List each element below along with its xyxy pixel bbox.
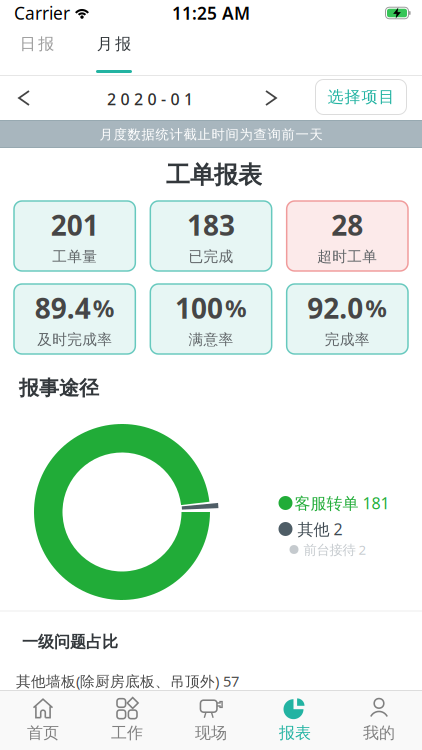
staticText: 报事途径 <box>19 376 99 400</box>
staticText: 客服转单 181 <box>294 492 389 514</box>
staticText: 月报 <box>97 34 131 54</box>
button[interactable]: 工作 <box>85 692 169 748</box>
staticText: 2020-01 <box>107 88 193 110</box>
button[interactable]: Previous month <box>9 81 39 115</box>
staticText: % <box>365 292 387 324</box>
staticText: 我的 <box>363 723 395 743</box>
staticText: 月度数据统计截止时间为查询前一天 <box>99 126 322 143</box>
staticText: 及时完成率 <box>37 331 112 349</box>
staticText: 100 <box>175 289 223 327</box>
staticText: 28 <box>331 206 363 244</box>
button[interactable]: 日报 <box>7 21 67 67</box>
staticText: 其他 2 <box>297 518 342 540</box>
button[interactable]: 现场 <box>169 692 253 748</box>
staticText: 工单量 <box>52 248 97 266</box>
staticText: 已完成 <box>188 248 233 266</box>
staticText: 完成率 <box>325 331 370 349</box>
staticText: 89.4 <box>35 289 91 327</box>
button[interactable]: 我的 <box>337 692 421 748</box>
staticText: 183 <box>187 206 235 244</box>
staticText: % <box>93 292 115 324</box>
staticText: 前台接待 2 <box>303 541 366 558</box>
staticText: 现场 <box>195 723 227 743</box>
staticText: 报表 <box>279 723 311 743</box>
staticText: Carrier <box>14 1 70 24</box>
button[interactable]: 首页 <box>1 692 85 748</box>
staticText: 满意率 <box>188 331 233 349</box>
button[interactable]: 报表 <box>253 692 337 748</box>
staticText: 其他墙板(除厨房底板、吊顶外) 57 <box>16 671 239 691</box>
button[interactable]: 月报 <box>84 21 144 67</box>
staticText: 92.0 <box>307 289 363 327</box>
staticText: % <box>225 292 247 324</box>
staticText: 11:25 AM <box>172 1 250 24</box>
staticText: 工单报表 <box>166 160 262 190</box>
staticText: 选择项目 <box>327 87 394 107</box>
staticText: 一级问题占比 <box>22 632 118 652</box>
staticText: 201 <box>51 206 99 244</box>
staticText: 首页 <box>27 723 59 743</box>
staticText: 超时工单 <box>317 248 377 266</box>
button[interactable]: 选择项目 <box>315 79 406 114</box>
staticText: 工作 <box>111 723 143 743</box>
button[interactable]: Next month <box>256 81 286 115</box>
staticText: 日报 <box>20 34 54 54</box>
